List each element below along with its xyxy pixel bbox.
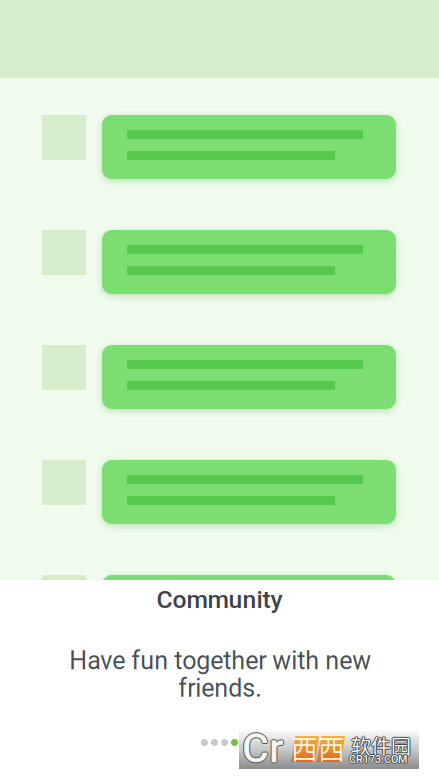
button[interactable]: Page 2 [211,739,218,746]
staticText: Cr [242,724,284,772]
staticText: Cr [242,725,284,773]
staticText: CR173.COM [348,753,406,765]
button[interactable]: Community post [0,115,439,179]
button[interactable]: Page 1 [201,739,208,746]
button[interactable]: Page 3 [221,739,228,746]
staticText: Have fun together with new friends. [69,646,371,703]
staticText: CR173.COM [350,753,408,765]
staticText: Community [156,585,282,614]
staticText: Cr [241,724,283,772]
staticText: 西西 [291,728,345,767]
staticText: 软件园 [352,731,412,760]
staticText: CR173.COM [349,753,407,765]
staticText: Cr [243,724,285,772]
staticText: CR173.COM [349,752,407,764]
staticText: 软件园 [351,730,411,759]
staticText: 软件园 [351,732,411,761]
staticText: CR173.COM [349,754,407,766]
staticText: 软件园 [351,731,411,760]
button[interactable]: Community post [0,460,439,524]
button[interactable]: Page 4 [231,739,238,746]
button[interactable]: Community post [0,345,439,409]
button[interactable]: Community post [0,575,439,639]
staticText: 软件园 [350,731,410,760]
button[interactable]: Community post [0,230,439,294]
staticText: Cr [242,723,284,771]
